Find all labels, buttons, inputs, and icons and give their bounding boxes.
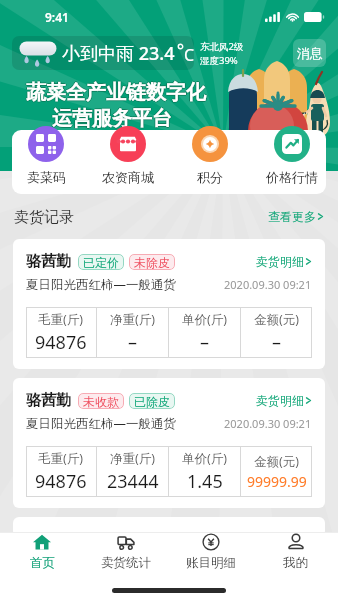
staticText: 夏日阳光西红柿—一般通货 [26, 276, 177, 293]
staticText: 净重(斤) [110, 450, 156, 467]
button[interactable]: 积分 [182, 130, 238, 185]
button[interactable]: 卖货明细 [256, 393, 312, 408]
button[interactable]: 骆茜勤 [13, 239, 325, 369]
staticText: 净重(斤) [110, 311, 156, 328]
staticText: 湿度39% [200, 54, 238, 67]
button[interactable]: 卖货明细 [256, 254, 312, 269]
staticText: 价格行情 [266, 169, 318, 185]
button[interactable]: Sales statistics [84, 533, 168, 571]
staticText: 已定价 [83, 255, 119, 270]
other: Account details [202, 533, 220, 551]
staticText: 2020.09.30 09:21 [224, 277, 312, 292]
staticText: 94876 [35, 330, 87, 355]
staticText: 我的 [283, 555, 308, 571]
staticText: 运营服务平台 [52, 105, 172, 130]
button[interactable]: 卖菜码 [18, 130, 74, 185]
staticText: 毛重(斤) [38, 450, 84, 467]
staticText: – [128, 330, 137, 355]
staticText: 金额(元) [254, 311, 300, 328]
staticText: 运营服务平台 [52, 107, 172, 132]
other: Profile [287, 533, 305, 551]
button[interactable]: 农资商城 [100, 130, 156, 185]
staticText: 9:41 [45, 9, 69, 25]
staticText: 毛重(斤) [38, 311, 84, 328]
staticText: 金额(元) [254, 453, 300, 470]
staticText: 运营服务平台 [51, 106, 171, 131]
staticText: 已除皮 [134, 394, 170, 409]
staticText: – [272, 330, 281, 355]
staticText: 账目明细 [186, 555, 236, 571]
staticText: C [184, 44, 194, 66]
button[interactable]: Profile [253, 533, 338, 571]
button[interactable]: Account details [168, 533, 253, 571]
other: Home [33, 533, 51, 551]
staticText: 运营服务平台 [53, 106, 173, 131]
staticText: 94876 [35, 469, 87, 494]
staticText: 骆茜勤 [26, 391, 71, 410]
staticText: 蔬菜全产业链数字化 [26, 80, 206, 105]
staticText: 卖菜码 [27, 169, 66, 185]
staticText: 蔬菜全产业链数字化 [26, 79, 206, 104]
staticText: 骆茜勤 [26, 252, 71, 271]
staticText: 卖货明细 [256, 254, 304, 269]
staticText: 蔬菜全产业链数字化 [25, 80, 205, 105]
staticText: 1.45 [187, 469, 223, 494]
button[interactable]: 价格行情 [264, 130, 320, 185]
staticText: 小到中雨 23.4 [62, 41, 175, 66]
staticText: 99999.99 [247, 472, 307, 491]
staticText: 查看更多 [268, 209, 316, 224]
staticText: 农资商城 [102, 169, 154, 185]
button[interactable]: 消息 [293, 39, 326, 67]
staticText: 单价(斤) [182, 450, 228, 467]
other: Sales statistics [117, 533, 135, 551]
staticText: 单价(斤) [182, 311, 228, 328]
staticText: 未收款 [83, 394, 119, 409]
staticText: 未除皮 [134, 255, 170, 270]
button[interactable]: 查看更多 [268, 209, 324, 224]
button[interactable]: Home [0, 533, 84, 571]
staticText: 积分 [197, 169, 223, 185]
staticText: 卖货明细 [256, 393, 304, 408]
staticText: 23444 [107, 469, 159, 494]
staticText: 运营服务平台 [52, 106, 172, 131]
staticText: 首页 [30, 555, 55, 571]
staticText: 2020.09.30 09:21 [224, 416, 312, 431]
staticText: 卖货统计 [101, 555, 151, 571]
staticText: 夏日阳光西红柿—一般通货 [26, 415, 177, 432]
button[interactable]: 小到中雨 23.4 [12, 36, 194, 70]
staticText: 卖货记录 [14, 208, 74, 225]
staticText: 东北风2级 [200, 40, 244, 53]
staticText: 消息 [297, 45, 323, 61]
button[interactable]: 骆茜勤 [13, 378, 325, 508]
staticText: 蔬菜全产业链数字化 [27, 80, 207, 105]
staticText: – [200, 330, 209, 355]
staticText: 蔬菜全产业链数字化 [26, 81, 206, 106]
